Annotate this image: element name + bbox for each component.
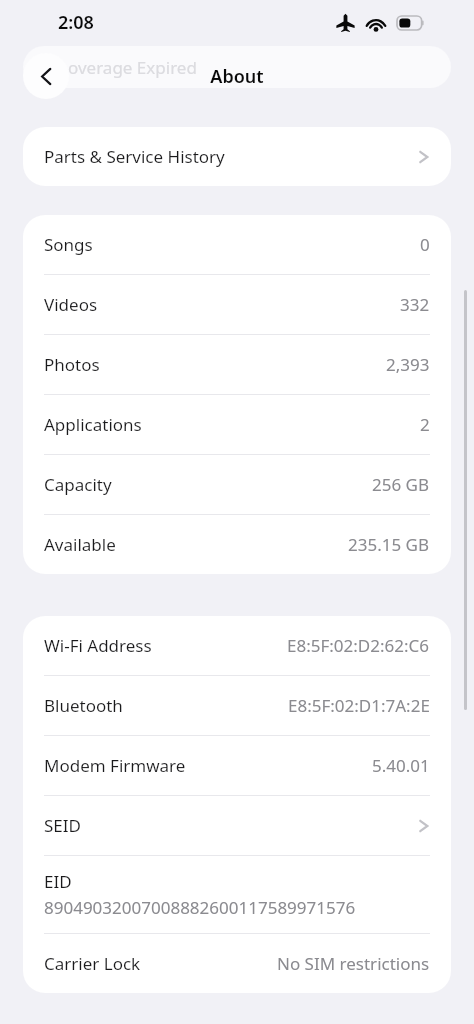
button[interactable]: Carrier Lock — [23, 934, 451, 993]
button[interactable]: Bluetooth — [23, 676, 451, 736]
staticText: Bluetooth — [44, 694, 123, 717]
staticText: Applications — [44, 413, 142, 436]
button[interactable]: Back — [23, 53, 69, 99]
staticText: 0 — [420, 233, 430, 256]
staticText: 332 — [400, 293, 430, 316]
button[interactable]: Capacity — [23, 455, 451, 515]
staticText: Photos — [44, 353, 100, 376]
button[interactable]: SEID — [23, 796, 451, 856]
staticText: Songs — [44, 233, 93, 256]
staticText: Modem Firmware — [44, 754, 186, 777]
staticText: overage Expired — [68, 56, 197, 79]
button[interactable]: Songs — [23, 215, 451, 275]
button[interactable]: Applications — [23, 395, 451, 455]
staticText: 2,393 — [386, 353, 430, 376]
staticText: 2:08 — [58, 10, 94, 35]
staticText: No SIM restrictions — [277, 952, 430, 975]
staticText: About — [210, 64, 264, 89]
staticText: Carrier Lock — [44, 952, 141, 975]
staticText: Available — [44, 533, 116, 556]
staticText: Videos — [44, 293, 98, 316]
staticText: E8:5F:02:D1:7A:2E — [288, 694, 430, 717]
staticText: SEID — [44, 814, 81, 837]
button[interactable]: EID — [23, 856, 451, 934]
staticText: 235.15 GB — [348, 533, 430, 556]
staticText: 2 — [420, 413, 430, 436]
staticText: E8:5F:02:D2:62:C6 — [287, 634, 430, 657]
staticText: EID — [44, 870, 72, 893]
button[interactable]: Modem Firmware — [23, 736, 451, 796]
button[interactable]: Available — [23, 515, 451, 574]
staticText: Wi-Fi Address — [44, 634, 152, 657]
button[interactable]: Videos — [23, 275, 451, 335]
button[interactable]: Photos — [23, 335, 451, 395]
staticText: 5.40.01 — [372, 754, 430, 777]
staticText: Parts & Service History — [44, 145, 225, 168]
staticText: 256 GB — [372, 473, 430, 496]
staticText: 89049032007008882600117589971576 — [44, 896, 356, 919]
staticText: Capacity — [44, 473, 112, 496]
button[interactable]: Wi-Fi Address — [23, 616, 451, 676]
button[interactable]: Parts & Service History — [23, 127, 451, 186]
